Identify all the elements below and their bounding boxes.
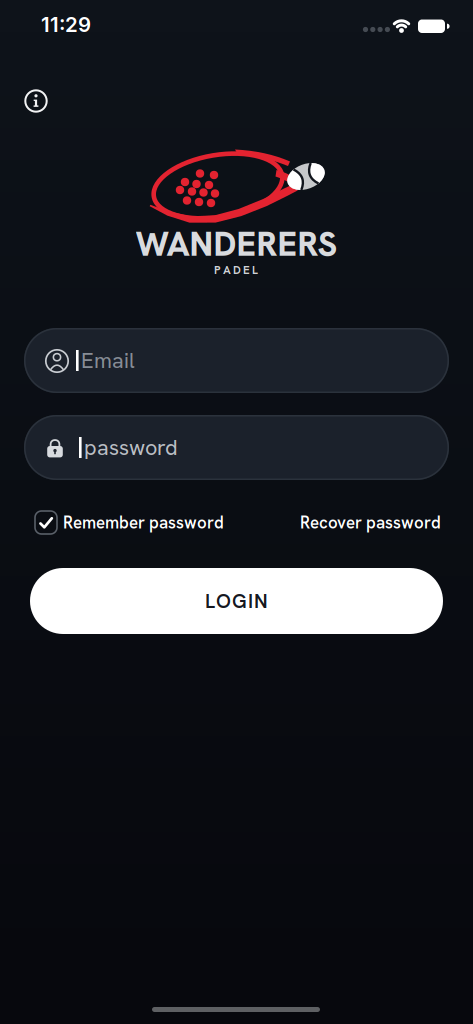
button[interactable]: Email — [24, 328, 449, 393]
staticText: password — [84, 433, 178, 461]
staticText: Remember password — [63, 511, 224, 533]
button[interactable]: L O G I N — [30, 568, 443, 634]
button[interactable]: Info — [18, 83, 54, 119]
button[interactable]: Recover password — [300, 511, 441, 533]
staticText: WANDERERS — [135, 222, 337, 266]
staticText: P A D E L — [214, 262, 258, 277]
staticText: Recover password — [300, 511, 441, 533]
staticText: 11:29 — [41, 12, 91, 37]
staticText: L O G I N — [205, 588, 268, 614]
staticText: Email — [81, 346, 135, 374]
button[interactable]: password — [24, 415, 449, 480]
button[interactable]: Remember password — [32, 511, 224, 534]
